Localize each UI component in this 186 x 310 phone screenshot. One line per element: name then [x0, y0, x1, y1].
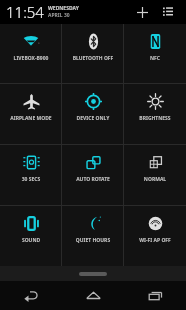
staticText: DEVICE ONLY [62, 115, 124, 122]
button[interactable]: AIRPLANE MODE [0, 84, 62, 144]
button[interactable]: WI-FI AP OFF [124, 206, 186, 266]
staticText: BRIGHTNESS [124, 115, 186, 122]
button[interactable]: Menu [156, 0, 180, 24]
staticText: SOUND [0, 237, 62, 244]
staticText: WEDNESDAY [48, 5, 79, 12]
staticText: AUTO ROTATE [62, 176, 124, 183]
staticText: 30 SECS [0, 176, 62, 183]
staticText: 11:54 [6, 2, 44, 22]
button[interactable]: Add tile [130, 0, 154, 24]
staticText: NORMAL [124, 176, 186, 183]
button[interactable]: LIVEBOX-B900 [0, 24, 62, 83]
button[interactable]: Back [0, 281, 62, 310]
staticText: WI-FI AP OFF [124, 237, 186, 244]
staticText: LIVEBOX-B900 [0, 55, 62, 62]
staticText: QUIET HOURS [62, 237, 124, 244]
button[interactable]: SOUND [0, 206, 62, 266]
button[interactable]: Collapse panel [0, 266, 186, 281]
staticText: NFC [124, 55, 186, 62]
button[interactable]: 30 SECS [0, 145, 62, 205]
button[interactable]: QUIET HOURS [62, 206, 124, 266]
button[interactable]: NFC [124, 24, 186, 83]
button[interactable]: NORMAL [124, 145, 186, 205]
button[interactable]: DEVICE ONLY [62, 84, 124, 144]
button[interactable]: BRIGHTNESS [124, 84, 186, 144]
button[interactable]: Home [62, 281, 124, 310]
staticText: APRIL 30 [48, 12, 70, 19]
staticText: AIRPLANE MODE [0, 115, 62, 122]
staticText: BLUETOOTH OFF [62, 55, 124, 62]
button[interactable]: Recent apps [124, 281, 186, 310]
button[interactable]: BLUETOOTH OFF [62, 24, 124, 83]
button[interactable]: AUTO ROTATE [62, 145, 124, 205]
